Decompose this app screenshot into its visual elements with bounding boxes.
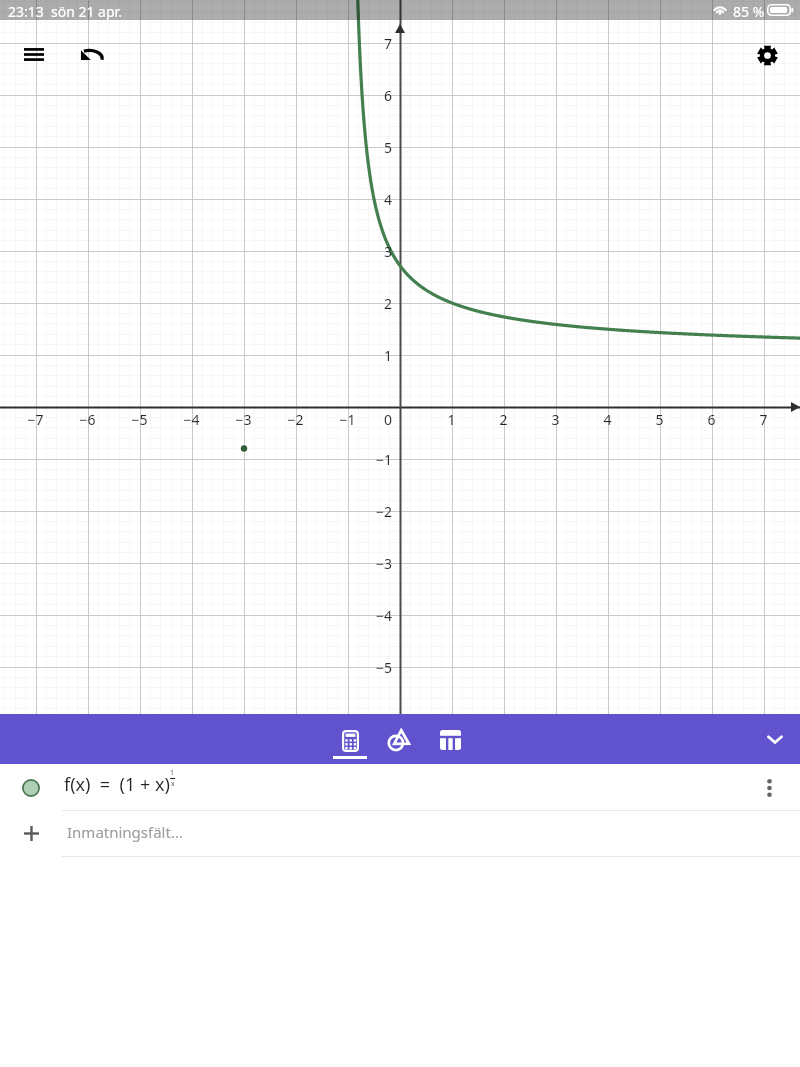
button[interactable]: More options [747,764,791,810]
button[interactable]: Inmatningsfält... [0,811,800,856]
staticText: 23:13 [8,2,44,21]
button[interactable]: Menu [14,35,53,74]
button[interactable]: Table [425,714,475,764]
staticText: 85 % [733,2,765,21]
staticText: 1 [170,768,175,778]
button[interactable]: Collapse panel [750,714,800,764]
staticText: f(x) = (1 + x) [64,772,170,797]
button[interactable]: Settings [748,36,786,74]
button[interactable]: f(x) = (1 + x) [0,764,800,810]
button[interactable]: Calculator [325,714,375,764]
button[interactable]: Undo [72,35,111,74]
staticText: x [171,779,175,789]
staticText: Inmatningsfält... [67,822,183,842]
staticText: sön 21 apr. [51,2,122,21]
button[interactable]: Geometry tools [375,714,425,764]
